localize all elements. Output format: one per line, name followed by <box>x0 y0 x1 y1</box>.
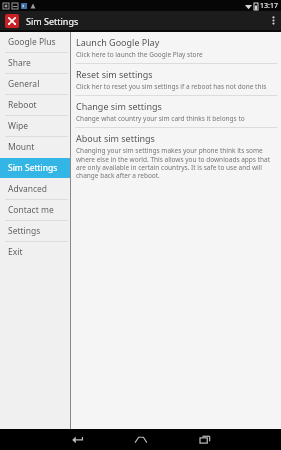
button[interactable]: Wipe <box>0 116 70 136</box>
button[interactable]: Settings <box>0 221 70 241</box>
button[interactable]: Contact me <box>0 200 70 220</box>
button[interactable]: More options <box>265 11 281 30</box>
button[interactable]: Launch Google Play <box>71 32 281 63</box>
button[interactable]: Back <box>64 429 90 450</box>
staticText: Change sim settings <box>76 100 162 112</box>
button[interactable]: Reboot <box>0 95 70 115</box>
staticText: Share <box>8 57 31 69</box>
button[interactable]: Exit <box>0 242 70 262</box>
staticText: General <box>8 78 40 90</box>
staticText: Wipe <box>8 120 29 132</box>
button[interactable]: Share <box>0 53 70 73</box>
staticText: Reboot <box>8 99 37 111</box>
staticText: Changing your sim settings makes your ph… <box>76 146 275 180</box>
button[interactable]: Home <box>128 429 154 450</box>
button[interactable]: Mount <box>0 137 70 157</box>
button[interactable]: General <box>0 74 70 94</box>
staticText: Launch Google Play <box>76 36 160 48</box>
button[interactable]: About sim settings <box>71 128 281 184</box>
button[interactable]: Reset sim settings <box>71 64 281 95</box>
staticText: Change what country your sim card thinks… <box>76 114 245 123</box>
staticText: Reset sim settings <box>76 68 153 80</box>
button[interactable]: Sim Settings app icon <box>5 14 19 28</box>
staticText: Mount <box>8 141 35 153</box>
button[interactable]: Change sim settings <box>71 96 281 127</box>
staticText: Exit <box>8 246 23 258</box>
staticText: Click here to launch the Google Play sto… <box>76 50 203 59</box>
staticText: Sim Settings <box>8 162 58 174</box>
staticText: Google Plus <box>8 36 56 48</box>
button[interactable]: Sim Settings <box>0 158 70 178</box>
staticText: Advanced <box>8 183 48 195</box>
staticText: Click her to reset you sim settings if a… <box>76 82 267 91</box>
staticText: 13:17 <box>260 1 278 11</box>
button[interactable]: Recent apps <box>192 429 218 450</box>
button[interactable]: Google Plus <box>0 32 70 52</box>
staticText: Contact me <box>8 204 54 216</box>
staticText: About sim settings <box>76 132 155 144</box>
button[interactable]: Advanced <box>0 179 70 199</box>
staticText: Settings <box>8 225 41 237</box>
staticText: Sim Settings <box>26 15 79 27</box>
